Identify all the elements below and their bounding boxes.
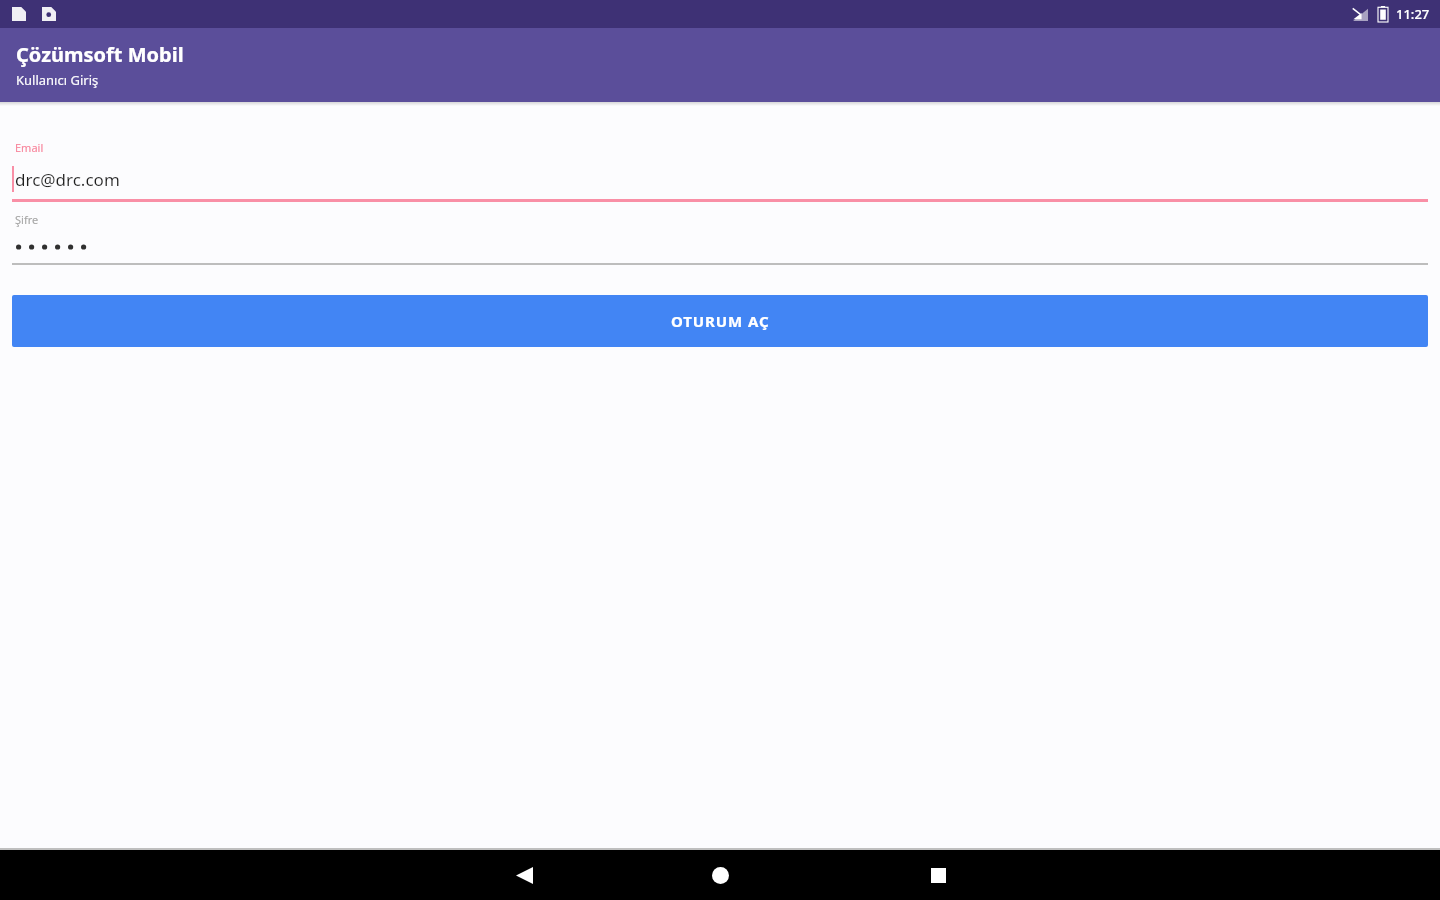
staticText: Kullanıcı Giriş <box>16 71 99 89</box>
staticText: Email <box>15 140 44 155</box>
button[interactable]: Şifre <box>0 212 1440 265</box>
staticText: drc@drc.com <box>15 168 120 191</box>
staticText: 11:27 <box>1396 5 1430 23</box>
staticText: OTURUM AÇ <box>671 311 770 331</box>
staticText: Şifre <box>15 212 39 227</box>
button[interactable]: OTURUM AÇ <box>12 295 1428 347</box>
button[interactable]: Back <box>500 851 548 899</box>
staticText: Çözümsoft Mobil <box>16 41 184 68</box>
button[interactable]: Email <box>0 140 1440 202</box>
button[interactable]: Recent apps <box>914 851 962 899</box>
button[interactable]: Home <box>696 851 744 899</box>
